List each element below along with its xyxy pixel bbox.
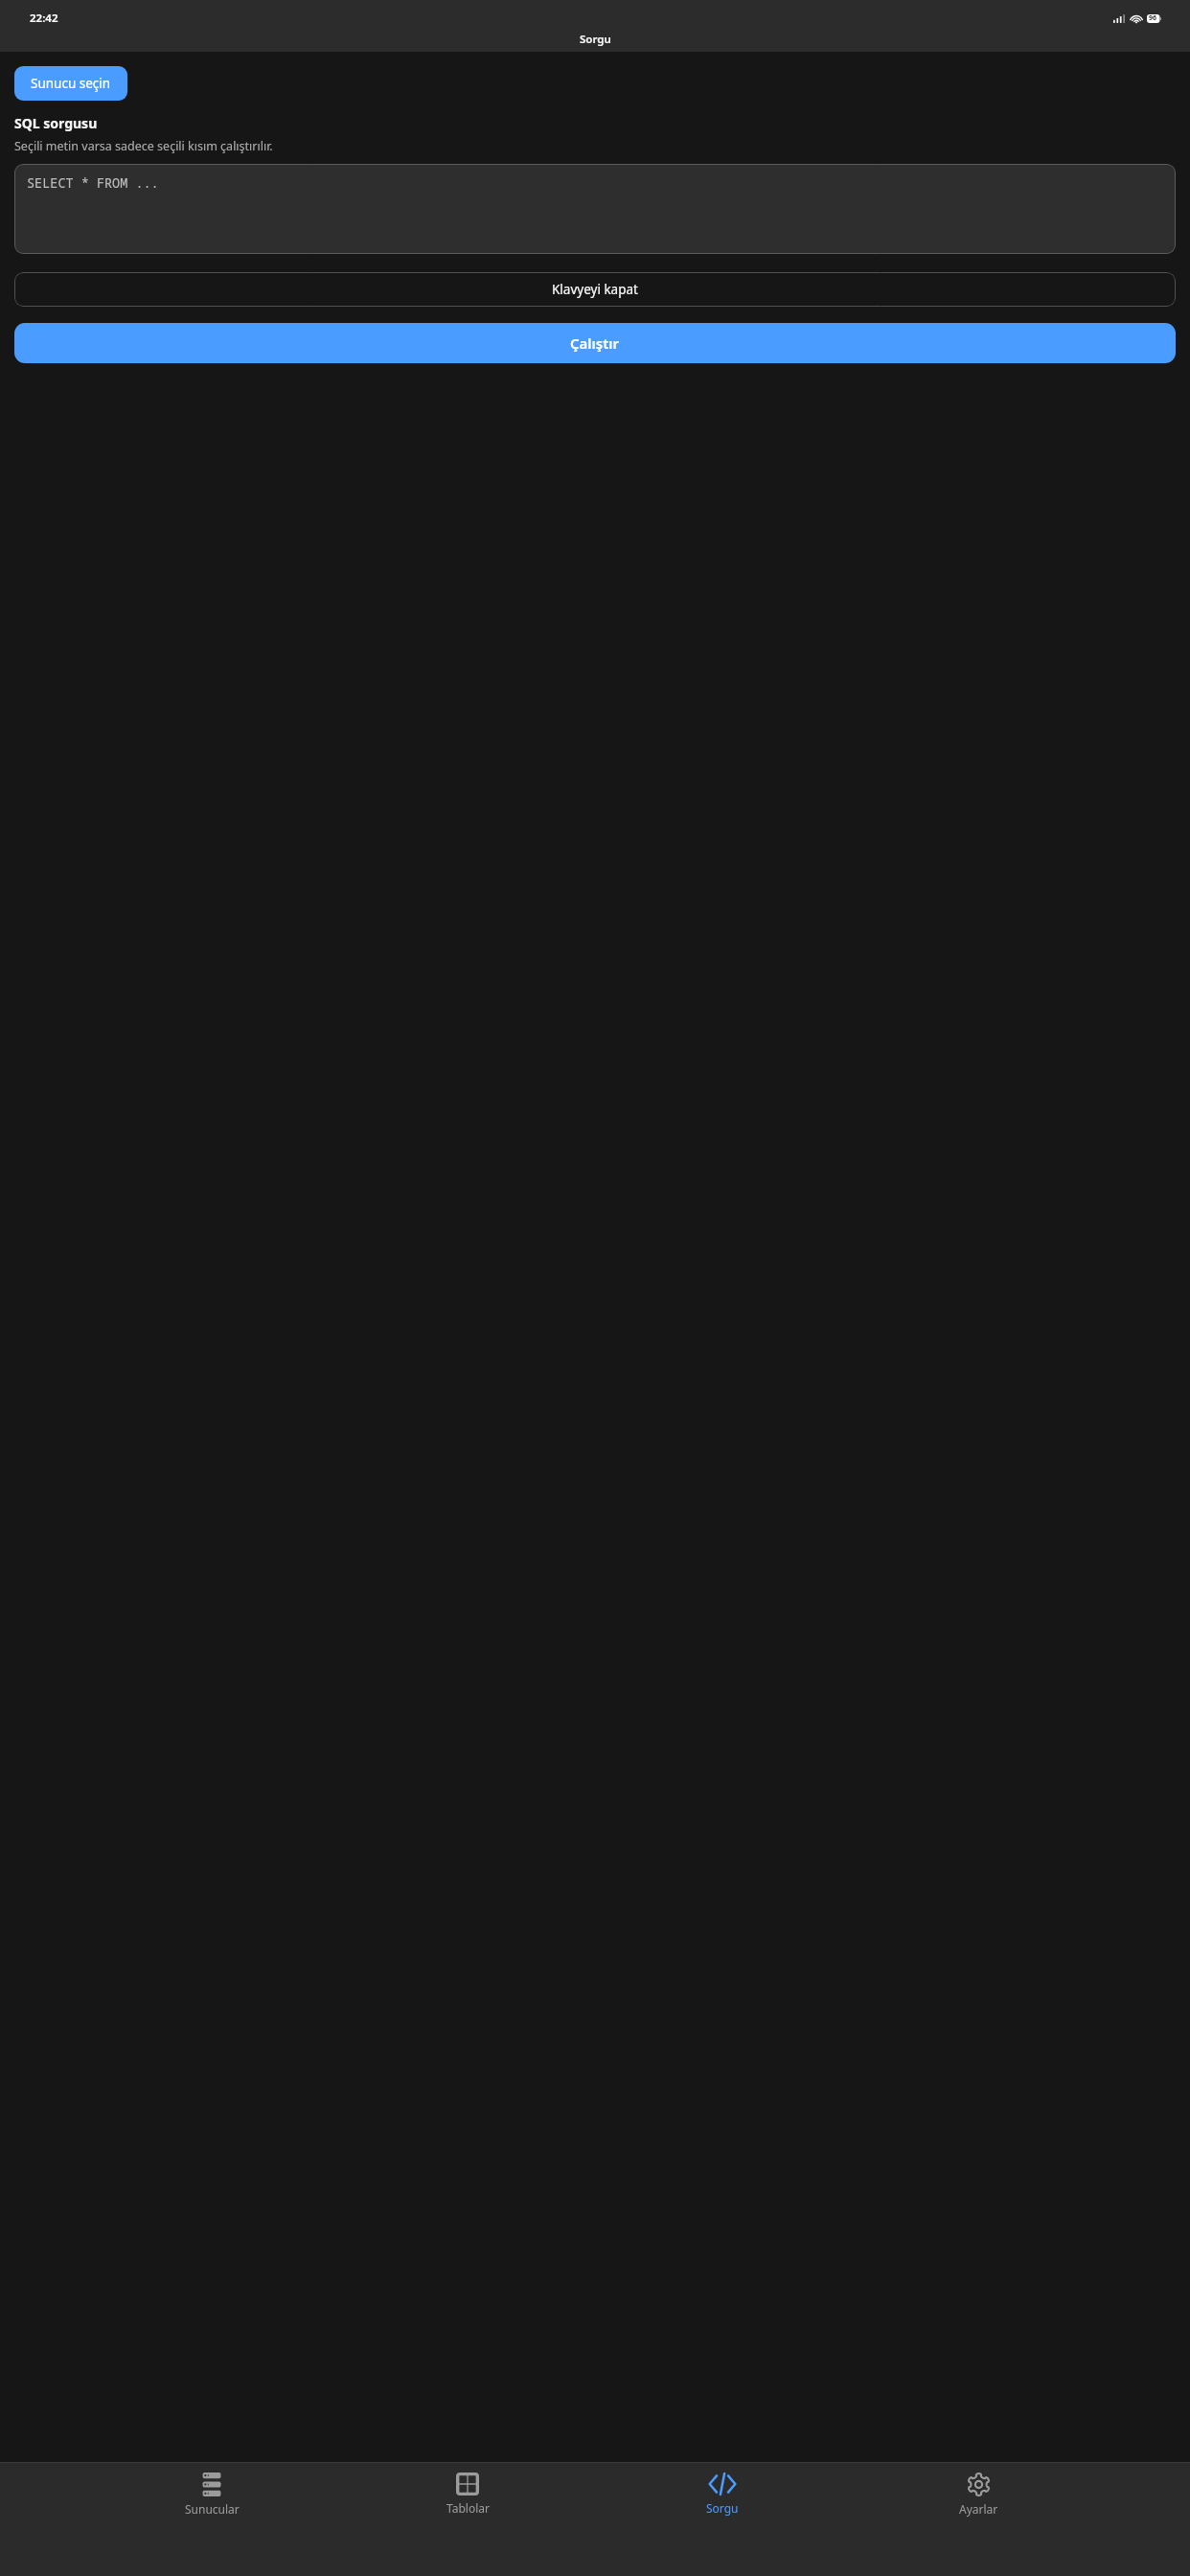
- staticText: Seçili metin varsa sadece seçili kısım ç…: [14, 138, 273, 154]
- staticText: SELECT * FROM ...: [27, 174, 159, 192]
- button[interactable]: Sunucu seçin: [14, 66, 127, 101]
- staticText: 96: [1149, 13, 1157, 23]
- button[interactable]: Çalıştır: [14, 323, 1176, 363]
- staticText: Sunucu seçin: [31, 75, 111, 92]
- button[interactable]: Klavyeyi kapat: [14, 272, 1176, 307]
- button[interactable]: Sunucular: [169, 2463, 255, 2576]
- staticText: Çalıştır: [570, 333, 620, 353]
- button[interactable]: Ayarlar: [935, 2463, 1021, 2576]
- staticText: Ayarlar: [959, 2501, 998, 2517]
- button[interactable]: Sorgu: [679, 2463, 766, 2576]
- button[interactable]: SELECT * FROM ...: [14, 164, 1176, 254]
- staticText: Sorgu: [580, 32, 611, 47]
- staticText: 22:42: [30, 11, 58, 26]
- staticText: Sunucular: [185, 2501, 240, 2517]
- staticText: Klavyeyi kapat: [552, 281, 638, 298]
- staticText: Sorgu: [706, 2500, 739, 2516]
- button[interactable]: Tablolar: [424, 2463, 511, 2576]
- staticText: SQL sorgusu: [14, 114, 98, 132]
- staticText: Tablolar: [446, 2500, 490, 2516]
